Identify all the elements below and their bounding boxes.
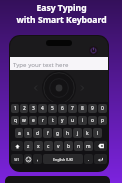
staticText: o — [91, 117, 94, 124]
button[interactable]: z — [24, 141, 33, 151]
button[interactable]: Power — [89, 46, 98, 55]
staticText: !#1 — [14, 157, 20, 162]
button[interactable]: 8 — [78, 104, 87, 113]
button[interactable]: d — [33, 128, 42, 138]
button[interactable]: 1 — [11, 104, 19, 113]
button[interactable]: j — [73, 128, 82, 138]
staticText: English (UK) — [53, 157, 74, 162]
button[interactable]: s — [24, 128, 32, 138]
button[interactable]: m — [84, 141, 93, 151]
button[interactable]: f — [43, 128, 52, 138]
staticText: . — [88, 156, 90, 163]
staticText: q — [14, 117, 17, 124]
staticText: r — [42, 117, 44, 124]
button[interactable]: q — [11, 116, 19, 125]
staticText: a — [18, 130, 21, 137]
button[interactable]: English (UK) — [43, 154, 83, 164]
staticText: s — [27, 130, 30, 137]
staticText: n — [77, 143, 80, 150]
staticText: d — [36, 130, 39, 137]
button[interactable]: , — [33, 154, 42, 164]
button[interactable]: 5 — [48, 104, 57, 113]
staticText: 0 — [101, 105, 104, 112]
button[interactable]: t — [48, 116, 57, 125]
button[interactable]: p — [98, 116, 107, 125]
button[interactable]: n — [74, 141, 83, 151]
button[interactable]: 2 — [20, 104, 28, 113]
button[interactable]: Emoji — [24, 154, 32, 164]
staticText: y — [61, 117, 64, 124]
staticText: 6 — [61, 105, 64, 112]
button[interactable]: r — [38, 116, 47, 125]
staticText: 5 — [51, 105, 54, 112]
button[interactable]: o — [88, 116, 97, 125]
button[interactable]: 0 — [98, 104, 107, 113]
button[interactable]: 6 — [58, 104, 67, 113]
staticText: c — [47, 143, 50, 150]
staticText: u — [71, 117, 74, 124]
staticText: Type your text here — [13, 60, 69, 68]
button[interactable]: 4 — [38, 104, 47, 113]
button[interactable]: 7 — [68, 104, 77, 113]
staticText: , — [37, 156, 39, 163]
button[interactable]: u — [68, 116, 77, 125]
staticText: 2 — [23, 105, 26, 112]
button[interactable]: v — [54, 141, 63, 151]
button[interactable]: a — [15, 128, 23, 138]
button[interactable]: x — [34, 141, 43, 151]
staticText: 8 — [81, 105, 84, 112]
button[interactable]: g — [53, 128, 62, 138]
staticText: l — [97, 130, 99, 137]
staticText: i — [82, 117, 84, 124]
staticText: e — [32, 117, 35, 124]
staticText: 9 — [91, 105, 94, 112]
button[interactable]: k — [83, 128, 92, 138]
staticText: Easy Typing — [36, 2, 87, 14]
staticText: 1 — [14, 105, 17, 112]
staticText: b — [67, 143, 70, 150]
button[interactable]: Type your text here — [10, 57, 108, 70]
button[interactable]: Shift — [11, 141, 23, 151]
staticText: w — [22, 117, 26, 124]
staticText: v — [57, 143, 60, 150]
staticText: x — [37, 143, 40, 150]
staticText: with Smart Keyboard — [16, 14, 107, 26]
staticText: t — [52, 117, 54, 124]
button[interactable]: Enter — [94, 154, 107, 164]
staticText: f — [47, 130, 49, 137]
button[interactable]: Backspace — [94, 141, 107, 151]
button[interactable]: b — [64, 141, 73, 151]
staticText: p — [101, 117, 104, 124]
staticText: j — [77, 130, 79, 137]
staticText: k — [86, 130, 89, 137]
button[interactable]: w — [20, 116, 28, 125]
button[interactable]: e — [29, 116, 37, 125]
button[interactable]: y — [58, 116, 67, 125]
button[interactable]: h — [63, 128, 72, 138]
staticText: h — [66, 130, 69, 137]
staticText: z — [27, 143, 30, 150]
staticText: m — [86, 143, 91, 150]
staticText: 4 — [41, 105, 44, 112]
button[interactable]: l — [93, 128, 102, 138]
button[interactable]: . — [84, 154, 93, 164]
staticText: 3 — [32, 105, 35, 112]
button[interactable]: i — [78, 116, 87, 125]
button[interactable]: c — [44, 141, 53, 151]
button[interactable]: 3 — [29, 104, 37, 113]
button[interactable]: !#1 — [11, 154, 23, 164]
staticText: 7 — [71, 105, 74, 112]
button[interactable]: 9 — [88, 104, 97, 113]
staticText: g — [56, 130, 59, 137]
